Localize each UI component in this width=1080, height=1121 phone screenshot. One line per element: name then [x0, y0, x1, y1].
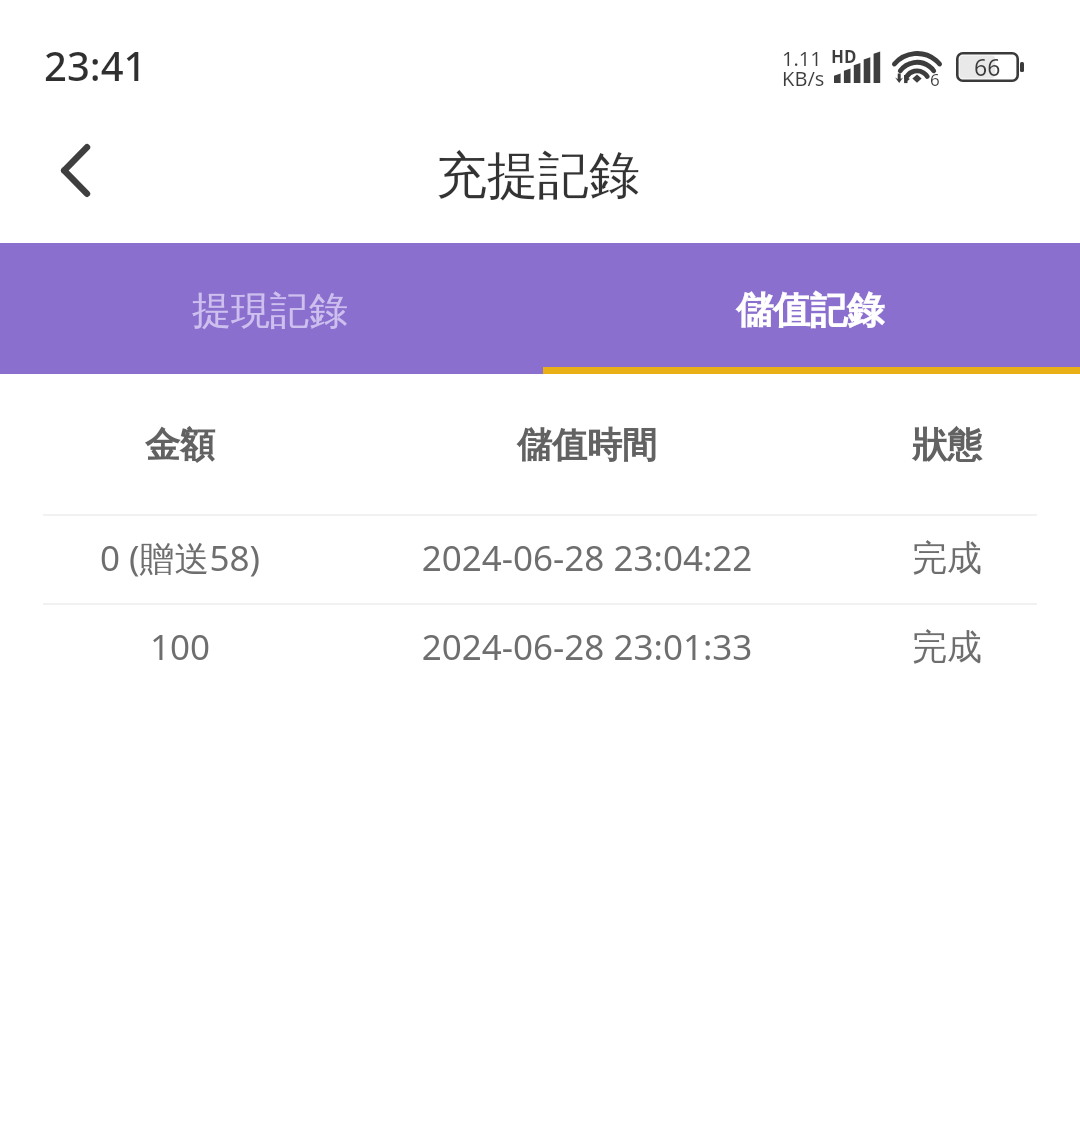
- staticText: 完成: [814, 536, 1080, 580]
- button[interactable]: 提現記錄: [0, 243, 540, 374]
- staticText: 23:41: [44, 38, 147, 92]
- button[interactable]: 100: [0, 605, 1080, 692]
- staticText: 充提記錄: [436, 144, 640, 208]
- staticText: 2024-06-28 23:04:22: [360, 534, 814, 582]
- staticText: 1.11: [782, 45, 822, 72]
- staticText: 完成: [814, 625, 1080, 669]
- button[interactable]: 0 (贈送58): [0, 516, 1080, 603]
- staticText: 狀態: [814, 423, 1080, 467]
- staticText: 儲值記錄: [736, 287, 884, 334]
- button[interactable]: Back: [3, 110, 149, 243]
- staticText: HD: [831, 45, 857, 68]
- staticText: 金額: [0, 423, 360, 467]
- staticText: 100: [0, 623, 360, 671]
- staticText: 提現記錄: [192, 286, 348, 335]
- button[interactable]: 儲值記錄: [540, 243, 1080, 374]
- staticText: 6: [930, 68, 940, 91]
- staticText: KB/s: [782, 65, 825, 92]
- staticText: 2024-06-28 23:01:33: [360, 623, 814, 671]
- staticText: 0 (贈送58): [0, 534, 360, 582]
- staticText: 儲值時間: [360, 423, 814, 467]
- staticText: 66: [974, 51, 1001, 82]
